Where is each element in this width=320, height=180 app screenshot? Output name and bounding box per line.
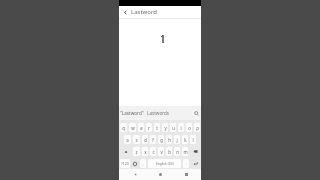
button[interactable]: h: [166, 135, 172, 144]
staticText: q: [122, 125, 125, 131]
staticText: f: [152, 137, 154, 143]
staticText: d: [144, 137, 147, 143]
button[interactable]: b: [166, 147, 172, 156]
staticText: x: [144, 149, 147, 155]
button[interactable]: Emoji: [132, 159, 138, 168]
staticText: ?123: [121, 161, 129, 166]
staticText: j: [176, 137, 178, 143]
button[interactable]: t: [154, 123, 160, 132]
button[interactable]: x: [142, 147, 148, 156]
staticText: l: [192, 137, 194, 143]
staticText: Lastwords: [147, 110, 170, 116]
staticText: Lastword: [131, 8, 157, 16]
button[interactable]: k: [182, 135, 188, 144]
button[interactable]: Enter: [191, 159, 200, 168]
button[interactable]: z: [133, 147, 140, 156]
button[interactable]: Recents: [176, 169, 196, 180]
button[interactable]: s: [133, 135, 140, 144]
staticText: t: [156, 125, 158, 131]
staticText: a: [126, 137, 129, 143]
staticText: b: [168, 149, 171, 155]
button[interactable]: d: [142, 135, 148, 144]
button[interactable]: m: [182, 147, 188, 156]
staticText: h: [168, 137, 171, 143]
button[interactable]: v: [158, 147, 164, 156]
button[interactable]: g: [158, 135, 164, 144]
button[interactable]: i: [178, 123, 184, 132]
button[interactable]: Backspace: [190, 147, 200, 156]
button[interactable]: u: [170, 123, 176, 132]
button[interactable]: Navigate up: [119, 6, 131, 18]
button[interactable]: c: [150, 147, 156, 156]
staticText: o: [188, 125, 191, 131]
button[interactable]: Back: [125, 169, 145, 180]
button[interactable]: w: [129, 123, 136, 132]
button[interactable]: Lastwords: [145, 106, 171, 120]
staticText: ,: [142, 161, 144, 167]
button[interactable]: ,: [140, 159, 146, 168]
staticText: z: [135, 149, 138, 155]
button[interactable]: English (US): [148, 159, 181, 168]
staticText: n: [176, 149, 179, 155]
staticText: English (US): [156, 162, 174, 166]
staticText: k: [184, 137, 187, 143]
staticText: g: [160, 137, 163, 143]
button[interactable]: "Lastword": [119, 106, 145, 120]
staticText: "Lastword": [120, 110, 144, 116]
button[interactable]: l: [190, 135, 196, 144]
button[interactable]: Shift: [120, 147, 131, 156]
button[interactable]: n: [174, 147, 180, 156]
button[interactable]: a: [124, 135, 131, 144]
button[interactable]: ?123: [120, 159, 130, 168]
staticText: u: [172, 125, 175, 131]
staticText: m: [183, 149, 188, 155]
button[interactable]: q: [120, 123, 127, 132]
button[interactable]: r: [146, 123, 152, 132]
button[interactable]: f: [150, 135, 156, 144]
staticText: s: [135, 137, 138, 143]
button[interactable]: p: [194, 123, 200, 132]
staticText: e: [140, 125, 143, 131]
button[interactable]: Search: [191, 106, 201, 120]
staticText: p: [196, 125, 199, 131]
staticText: .: [185, 161, 187, 167]
staticText: i: [180, 125, 182, 131]
button[interactable]: .: [183, 159, 189, 168]
staticText: w: [131, 125, 135, 131]
button[interactable]: e: [138, 123, 144, 132]
staticText: r: [148, 125, 150, 131]
button[interactable]: Home: [150, 169, 170, 180]
staticText: y: [164, 125, 167, 131]
button[interactable]: j: [174, 135, 180, 144]
button[interactable]: y: [162, 123, 168, 132]
staticText: c: [152, 149, 155, 155]
button[interactable]: o: [186, 123, 192, 132]
staticText: v: [160, 149, 163, 155]
